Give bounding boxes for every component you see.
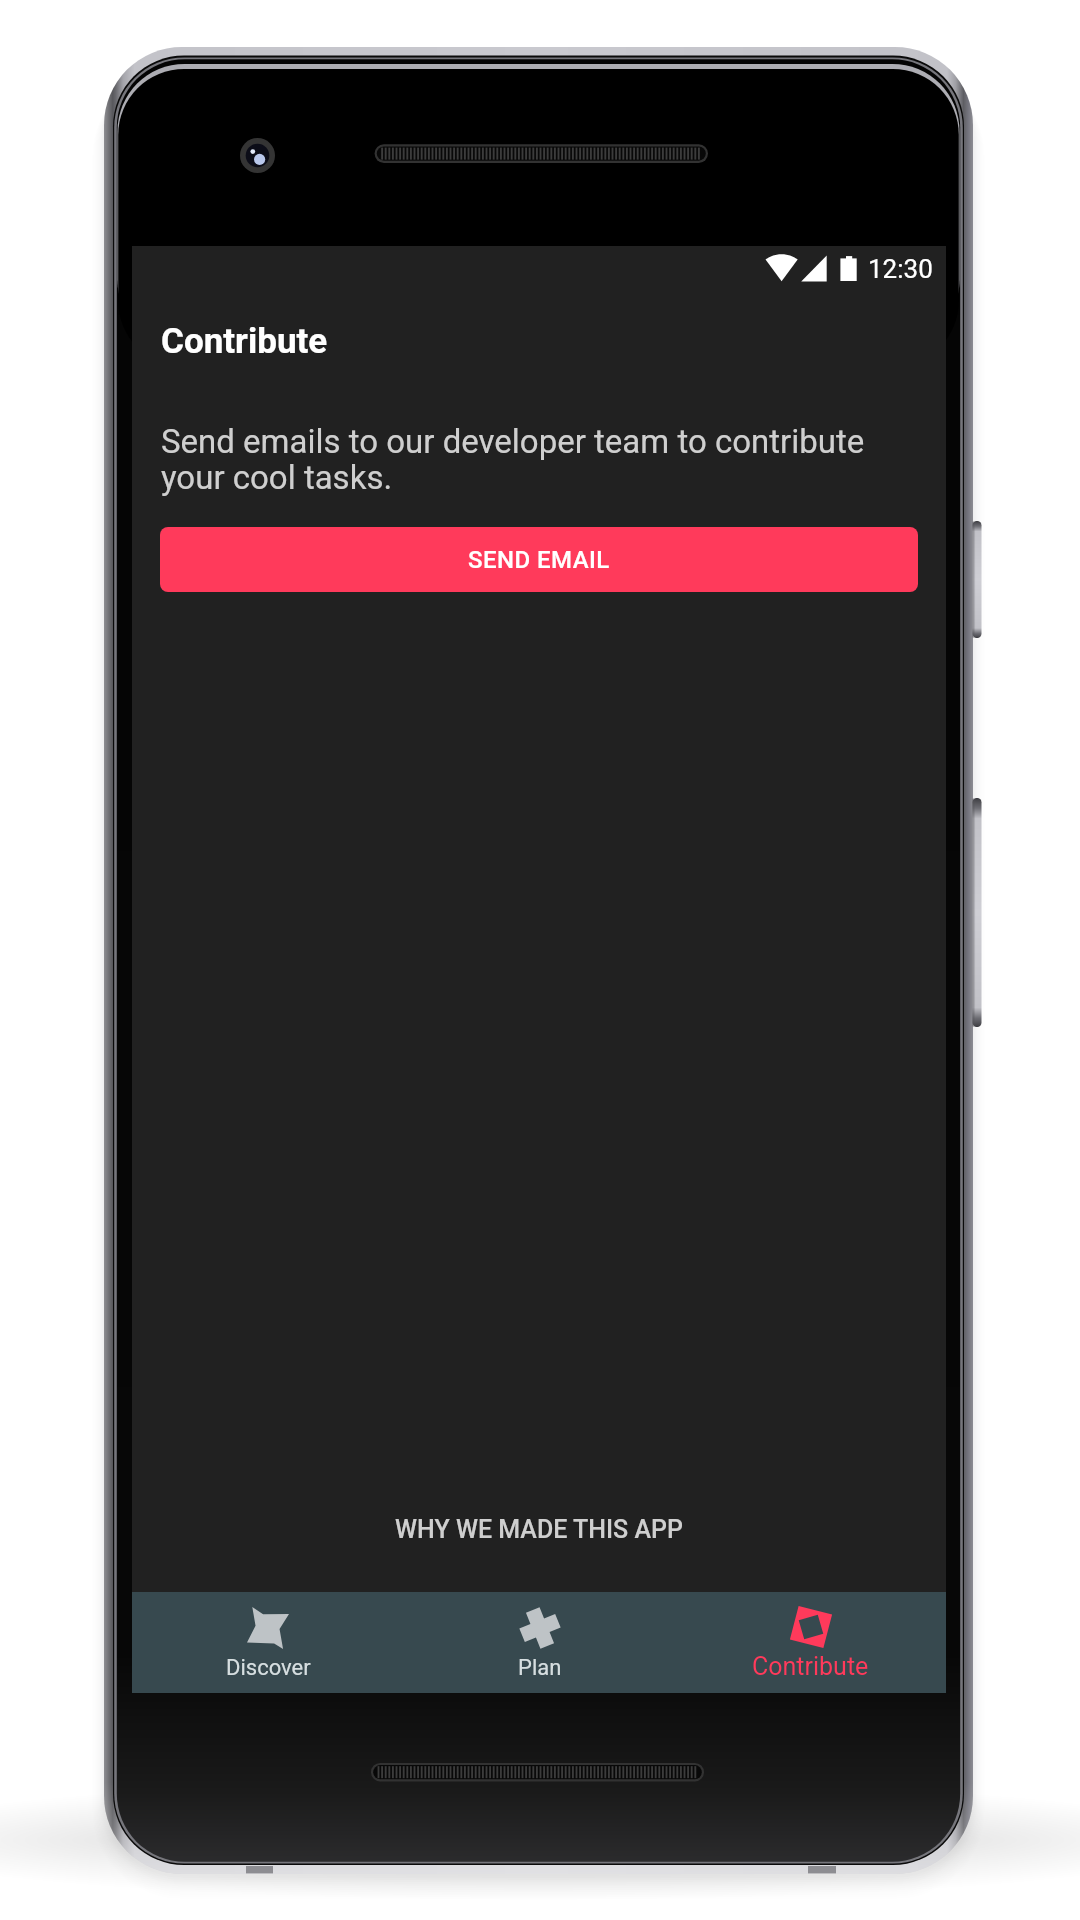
staticText: Contribute [752, 1652, 869, 1681]
button[interactable]: Discover [132, 1592, 404, 1693]
button[interactable]: Plan [404, 1592, 675, 1693]
button[interactable]: WHY WE MADE THIS APP [395, 1511, 683, 1548]
staticText: Send emails to our developer team to con… [161, 422, 917, 497]
staticText: 12:30 [868, 254, 933, 284]
staticText: Contribute [161, 321, 328, 362]
staticText: Discover [226, 1655, 311, 1681]
button[interactable]: Contribute [675, 1592, 946, 1693]
staticText: SEND EMAIL [468, 546, 610, 574]
button[interactable]: SEND EMAIL [160, 527, 918, 592]
staticText: Plan [518, 1655, 562, 1681]
